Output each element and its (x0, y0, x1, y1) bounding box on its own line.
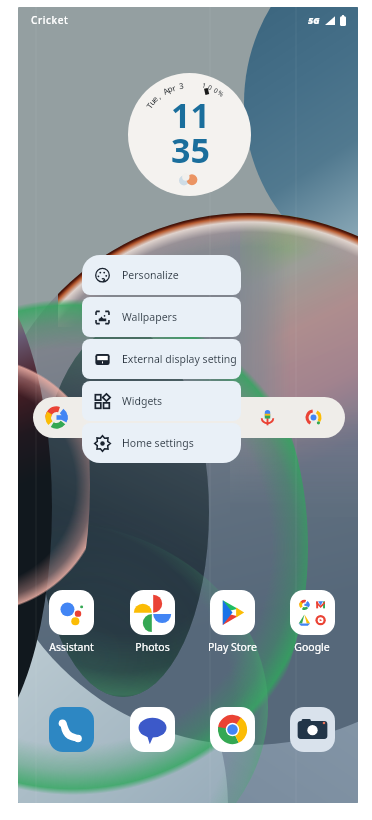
staticText: 5G (308, 14, 320, 26)
staticText: 35 (171, 127, 210, 173)
staticText: T (144, 100, 155, 111)
other: Google Lens (304, 408, 323, 427)
button[interactable]: Assistant (34, 590, 108, 654)
button[interactable]: Messages (115, 701, 189, 757)
button[interactable]: Home settings (82, 423, 241, 463)
staticText: e (149, 93, 160, 104)
other: Voice search (259, 409, 276, 426)
staticText: Cricket (31, 13, 69, 27)
staticText: 3 (178, 80, 185, 91)
staticText: % (216, 88, 226, 99)
staticText: 11 (171, 92, 210, 138)
button[interactable]: Chrome (195, 701, 269, 757)
staticText: Personalize (122, 268, 179, 282)
staticText: r (170, 82, 178, 93)
button[interactable]: Google (275, 590, 349, 654)
staticText: u (146, 96, 158, 107)
staticText (157, 88, 166, 99)
button[interactable]: T (128, 73, 251, 196)
button[interactable]: Voice search (33, 397, 345, 438)
staticText (175, 80, 180, 91)
staticText: Wallpapers (122, 310, 177, 324)
staticText: 0 (212, 86, 220, 95)
button[interactable]: Camera (275, 701, 349, 757)
button[interactable]: Play Store (195, 590, 269, 654)
staticText: External display setting (122, 352, 237, 366)
staticText: Widgets (122, 394, 163, 408)
button[interactable]: Personalize (82, 255, 241, 295)
staticText: 1 (201, 81, 207, 90)
staticText: Play Store (208, 640, 257, 654)
button[interactable]: Widgets (82, 381, 241, 421)
button[interactable]: Phone (34, 701, 108, 757)
staticText: p (165, 82, 174, 95)
staticText: 0 (206, 83, 214, 92)
button[interactable]: External display setting (82, 339, 241, 379)
staticText: Assistant (49, 640, 94, 654)
staticText: Google (294, 640, 330, 654)
staticText: Home settings (122, 436, 194, 450)
button[interactable]: Wallpapers (82, 297, 241, 337)
staticText: Photos (135, 640, 170, 654)
staticText: , (154, 90, 163, 101)
staticText: A (161, 84, 171, 97)
button[interactable]: Photos (115, 590, 189, 654)
